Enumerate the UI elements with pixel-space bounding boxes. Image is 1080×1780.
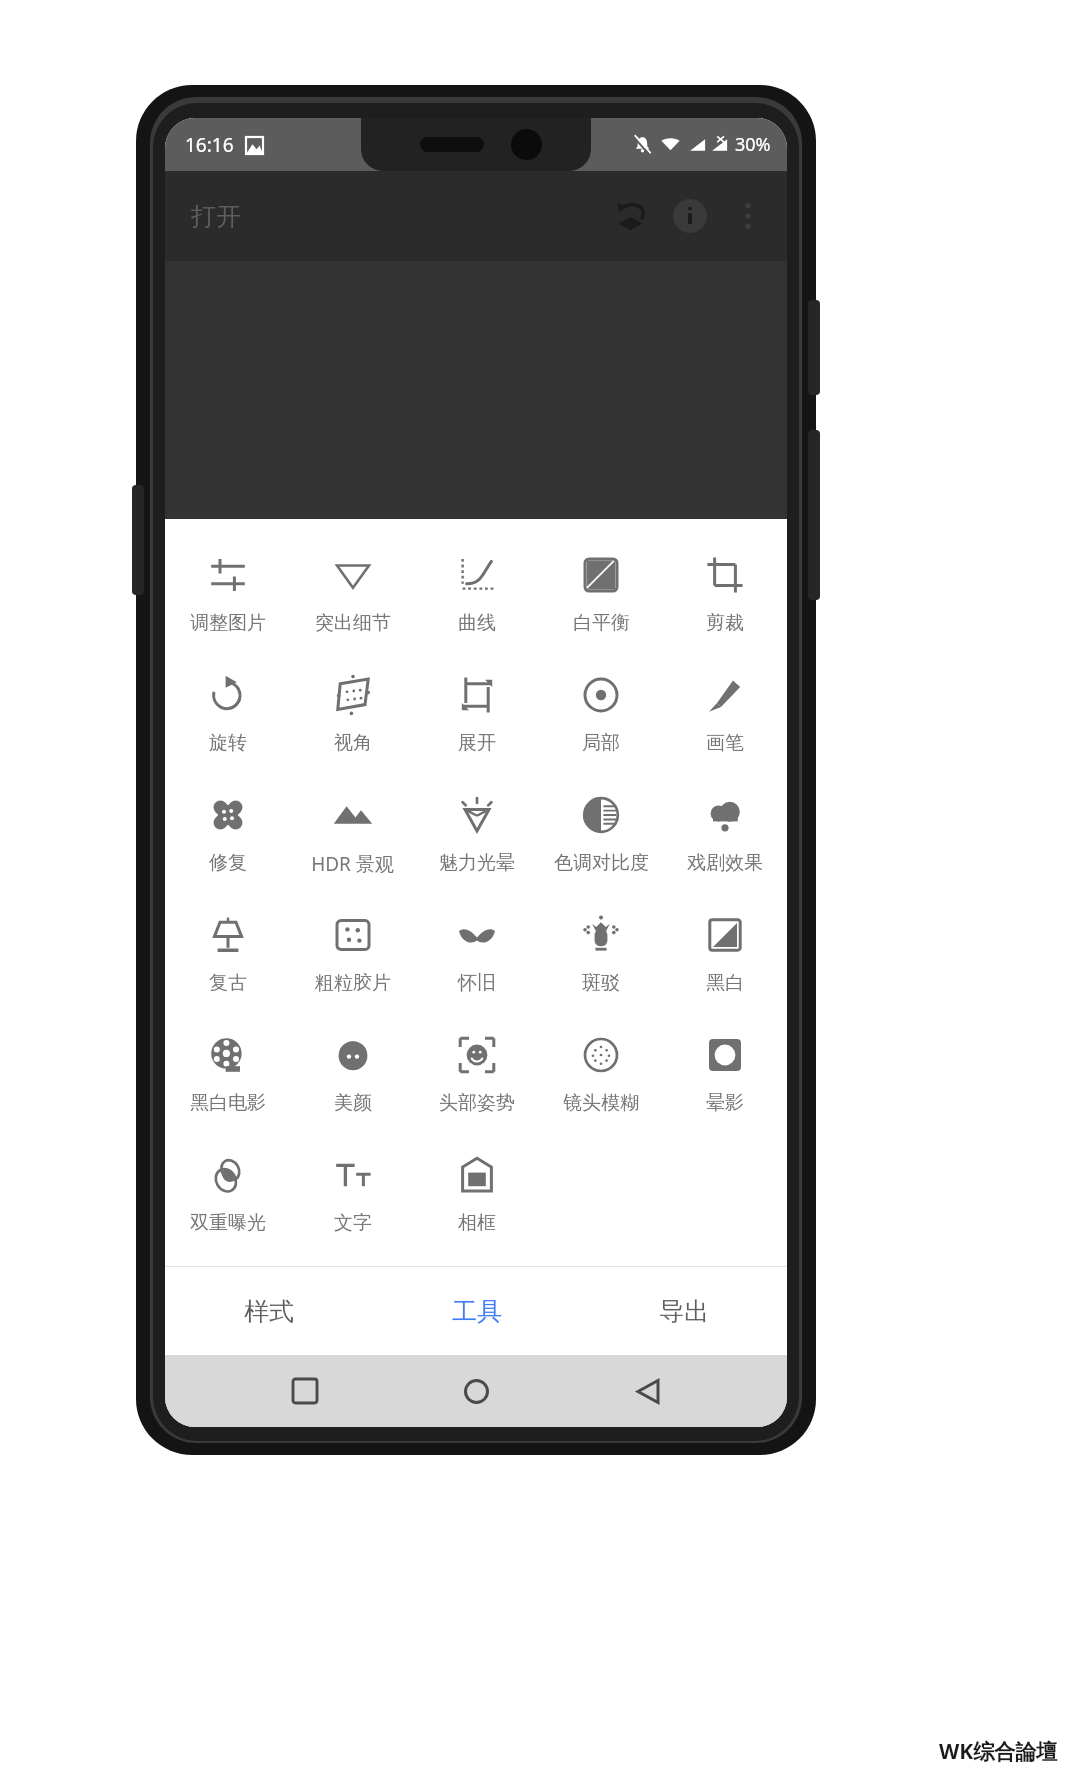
button[interactable]: 镜头模糊 [539, 1025, 663, 1145]
button[interactable]: 双重曝光 [165, 1145, 290, 1265]
staticText: 斑驳 [582, 971, 620, 995]
button[interactable]: 样式 [165, 1267, 373, 1355]
staticText: WK综合論壇 [939, 1737, 1058, 1766]
staticText: HDR 景观 [311, 851, 394, 877]
staticText: 展开 [458, 731, 496, 755]
button[interactable]: 斑驳 [539, 905, 663, 1025]
button[interactable]: 色调对比度 [539, 785, 663, 905]
button[interactable]: 文字 [290, 1145, 415, 1265]
button[interactable]: 魅力光晕 [415, 785, 539, 905]
button[interactable]: 工具 [373, 1267, 580, 1355]
staticText: 导出 [659, 1296, 709, 1327]
staticText: 白平衡 [573, 611, 630, 635]
button[interactable]: 相框 [415, 1145, 539, 1265]
button[interactable]: 突出细节 [290, 545, 415, 665]
button[interactable]: 粗粒胶片 [290, 905, 415, 1025]
staticText: 色调对比度 [554, 851, 649, 875]
button[interactable]: 打开 [187, 197, 245, 236]
button[interactable]: 调整图片 [165, 545, 290, 665]
button[interactable]: 晕影 [663, 1025, 787, 1145]
button[interactable]: 曲线 [415, 545, 539, 665]
button[interactable]: 导出 [580, 1267, 787, 1355]
button[interactable]: Home [444, 1359, 508, 1423]
staticText: 复古 [209, 971, 247, 995]
staticText: 头部姿势 [439, 1091, 515, 1115]
staticText: 黑白电影 [190, 1091, 266, 1115]
button[interactable]: Recents [273, 1359, 337, 1423]
staticText: 文字 [334, 1211, 372, 1235]
button[interactable]: 视角 [290, 665, 415, 785]
button[interactable]: 黑白电影 [165, 1025, 290, 1145]
button[interactable]: 美颜 [290, 1025, 415, 1145]
staticText: 修复 [209, 851, 247, 875]
staticText: 美颜 [334, 1091, 372, 1115]
button[interactable]: Info [661, 187, 719, 245]
staticText: 镜头模糊 [563, 1091, 639, 1115]
button[interactable]: 头部姿势 [415, 1025, 539, 1145]
staticText: 16:16 [185, 132, 234, 158]
staticText: 旋转 [209, 731, 247, 755]
button[interactable]: 复古 [165, 905, 290, 1025]
staticText: 剪裁 [706, 611, 744, 635]
staticText: 样式 [244, 1296, 294, 1327]
button[interactable]: Back [616, 1359, 680, 1423]
button[interactable]: 画笔 [663, 665, 787, 785]
button[interactable]: 修复 [165, 785, 290, 905]
staticText: 怀旧 [458, 971, 496, 995]
button[interactable]: 黑白 [663, 905, 787, 1025]
staticText: 相框 [458, 1211, 496, 1235]
staticText: 双重曝光 [190, 1211, 266, 1235]
staticText: 打开 [191, 201, 241, 232]
staticText: 魅力光晕 [439, 851, 515, 875]
button[interactable]: 怀旧 [415, 905, 539, 1025]
staticText: 局部 [582, 731, 620, 755]
staticText: 视角 [334, 731, 372, 755]
staticText: 突出细节 [315, 611, 391, 635]
staticText: 晕影 [706, 1091, 744, 1115]
button[interactable]: 局部 [539, 665, 663, 785]
button[interactable]: Undo layers [603, 187, 661, 245]
button[interactable]: 展开 [415, 665, 539, 785]
button[interactable]: 戏剧效果 [663, 785, 787, 905]
staticText: 曲线 [458, 611, 496, 635]
staticText: 画笔 [706, 731, 744, 755]
button[interactable]: 白平衡 [539, 545, 663, 665]
staticText: 工具 [452, 1296, 502, 1327]
button[interactable]: HDR 景观 [290, 785, 415, 905]
button[interactable]: 剪裁 [663, 545, 787, 665]
staticText: 黑白 [706, 971, 744, 995]
staticText: 戏剧效果 [687, 851, 763, 875]
staticText: 粗粒胶片 [315, 971, 391, 995]
button[interactable]: 旋转 [165, 665, 290, 785]
staticText: 30% [735, 132, 771, 157]
staticText: 调整图片 [190, 611, 266, 635]
